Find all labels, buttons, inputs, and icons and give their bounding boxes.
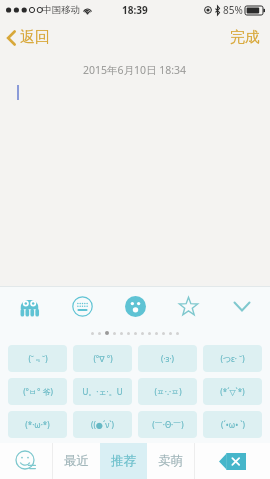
- button[interactable]: Favorites: [162, 286, 215, 326]
- staticText: (°∇ °): [93, 353, 113, 364]
- button[interactable]: Emoji: [109, 286, 162, 326]
- staticText: (*·ω·*): [25, 419, 50, 430]
- staticText: (つε· ˘): [220, 353, 245, 364]
- button[interactable]: 返回: [0, 24, 60, 51]
- button[interactable]: 完成: [220, 24, 270, 51]
- button[interactable]: 推荐: [100, 443, 147, 479]
- staticText: (°ㅂ° 爷): [23, 386, 53, 397]
- button[interactable]: (つε· ˘): [203, 345, 262, 372]
- button[interactable]: Octopus stickers: [2, 286, 56, 326]
- button[interactable]: 最近: [53, 443, 100, 479]
- button[interactable]: (ㅍ·.·ㅍ): [138, 378, 197, 405]
- button[interactable]: Collapse keyboard: [215, 286, 268, 326]
- button[interactable]: ((●´ν`): [73, 411, 132, 438]
- button[interactable]: (˘﹃˘): [8, 345, 67, 372]
- button[interactable]: Backspace: [195, 443, 270, 479]
- staticText: 中国移动: [42, 4, 80, 16]
- staticText: (*´▽`*): [220, 386, 245, 397]
- staticText: 完成: [230, 28, 260, 47]
- button[interactable]: (°∇ °): [73, 345, 132, 372]
- staticText: 返回: [20, 28, 50, 47]
- staticText: 85%: [223, 3, 243, 17]
- staticText: 卖萌: [158, 453, 183, 469]
- button[interactable]: (´•ω• `): [203, 411, 262, 438]
- button[interactable]: U。·ェ·。U: [73, 378, 132, 405]
- button[interactable]: (*·ω·*): [8, 411, 67, 438]
- staticText: (￣·Θ·￣): [152, 419, 184, 430]
- button[interactable]: (*´▽`*): [203, 378, 262, 405]
- staticText: 18:39: [122, 3, 148, 17]
- button[interactable]: (·з·): [138, 345, 197, 372]
- button[interactable]: (°ㅂ° 爷): [8, 378, 67, 405]
- staticText: (ㅍ·.·ㅍ): [154, 386, 182, 397]
- button[interactable]: Emoji keyboard: [0, 443, 52, 479]
- staticText: (˘﹃˘): [28, 353, 48, 364]
- staticText: (·з·): [161, 353, 174, 364]
- staticText: U。·ェ·。U: [82, 386, 123, 397]
- button[interactable]: 卖萌: [147, 443, 194, 479]
- staticText: 2015年6月10日 18:34: [83, 63, 187, 77]
- staticText: ((●´ν`): [91, 419, 114, 430]
- button[interactable]: Keyboard: [56, 286, 109, 326]
- button[interactable]: (￣·Θ·￣): [138, 411, 197, 438]
- staticText: 推荐: [111, 453, 136, 469]
- staticText: 最近: [64, 453, 89, 469]
- staticText: (´•ω• `): [221, 419, 245, 430]
